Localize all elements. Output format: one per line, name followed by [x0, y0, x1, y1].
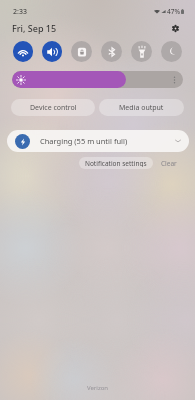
button[interactable]: Device control [11, 99, 95, 116]
staticText: Charging (55 m until full) [40, 136, 128, 146]
button[interactable]: Media output [99, 99, 184, 116]
staticText: Notification settings [85, 159, 147, 167]
staticText: Device control [30, 103, 77, 113]
staticText: Media output [119, 103, 164, 113]
staticText: Verizon [87, 384, 109, 392]
button[interactable]: Flashlight [131, 41, 152, 62]
button[interactable]: Wi-Fi [13, 41, 33, 62]
staticText: 2:33 [13, 7, 27, 17]
button[interactable]: Charging (55 m until full) [7, 130, 189, 152]
staticText: 47% [167, 7, 180, 16]
button[interactable]: Do not disturb [161, 41, 182, 62]
button[interactable]: Bluetooth [101, 41, 122, 62]
button[interactable]: Clear [159, 157, 179, 169]
button[interactable]: Settings [169, 22, 182, 35]
button[interactable]: Screen lock [71, 41, 92, 62]
staticText: Fri, Sep 15 [12, 22, 57, 34]
staticText: Clear [161, 159, 177, 167]
button[interactable]: Brightness [12, 71, 183, 88]
button[interactable]: Sound [42, 41, 62, 62]
button[interactable]: Notification settings [79, 157, 153, 169]
